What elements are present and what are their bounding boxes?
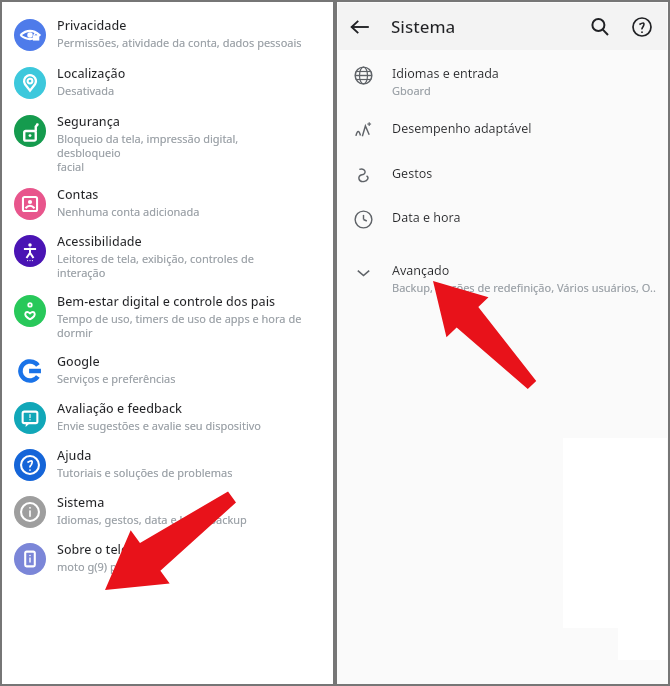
staticText: Localização [57, 65, 126, 82]
staticText: Sobre o telefone [57, 541, 156, 558]
staticText: Backup, Opções de redefinição, Vários us… [392, 280, 656, 295]
button[interactable]: Localização [3, 65, 332, 99]
button[interactable]: Data e hora [338, 209, 667, 229]
button[interactable]: Contas [3, 186, 332, 220]
staticText: Acessibilidade [57, 233, 142, 250]
button[interactable]: Avançado [338, 262, 667, 295]
staticText: Tutoriais e soluções de problemas [57, 465, 233, 480]
button[interactable]: Back [338, 5, 382, 49]
staticText: Idiomas e entrada [392, 65, 499, 82]
staticText: Desativada [57, 83, 115, 98]
button[interactable]: Segurança [3, 113, 332, 174]
staticText: Bloqueio da tela, impressão digital, des… [57, 131, 304, 174]
staticText: Segurança [57, 113, 120, 130]
staticText: Tempo de uso, timers de uso de apps e ho… [57, 311, 302, 340]
staticText: Sistema [391, 15, 456, 38]
button[interactable]: Acessibilidade [3, 233, 332, 280]
staticText: Permissões, atividade da conta, dados pe… [57, 35, 302, 50]
button[interactable]: Search [579, 6, 621, 48]
staticText: Google [57, 353, 100, 370]
button[interactable]: Ajuda [3, 447, 332, 481]
staticText: Bem-estar digital e controle dos pais [57, 293, 276, 310]
staticText: Idiomas, gestos, data e hora, backup [57, 512, 247, 527]
button[interactable]: Desempenho adaptável [338, 120, 667, 140]
button[interactable]: Avaliação e feedback [3, 400, 332, 434]
staticText: Gboard [392, 83, 431, 98]
staticText: Data e hora [392, 209, 461, 226]
staticText: Gestos [392, 165, 433, 182]
staticText: Leitores de tela, exibição, controles de… [57, 251, 304, 280]
button[interactable]: Gestos [338, 165, 667, 185]
staticText: Sistema [57, 494, 105, 511]
staticText: Avançado [392, 262, 450, 279]
staticText: Ajuda [57, 447, 92, 464]
staticText: Desempenho adaptável [392, 120, 532, 137]
button[interactable]: Sistema [3, 494, 332, 528]
staticText: Contas [57, 186, 99, 203]
staticText: Serviços e preferências [57, 371, 176, 386]
staticText: Envie sugestões e avalie seu dispositivo [57, 418, 261, 433]
staticText: Nenhuma conta adicionada [57, 204, 200, 219]
staticText: Avaliação e feedback [57, 400, 183, 417]
button[interactable]: Bem-estar digital e controle dos pais [3, 293, 332, 340]
button[interactable]: Idiomas e entrada [338, 65, 667, 98]
button[interactable]: Sobre o telefone [3, 541, 332, 575]
staticText: moto g(9) play [57, 559, 132, 574]
staticText: Privacidade [57, 17, 127, 34]
button[interactable]: Help [621, 6, 663, 48]
button[interactable]: Google [3, 353, 332, 387]
button[interactable]: Privacidade [3, 17, 332, 51]
